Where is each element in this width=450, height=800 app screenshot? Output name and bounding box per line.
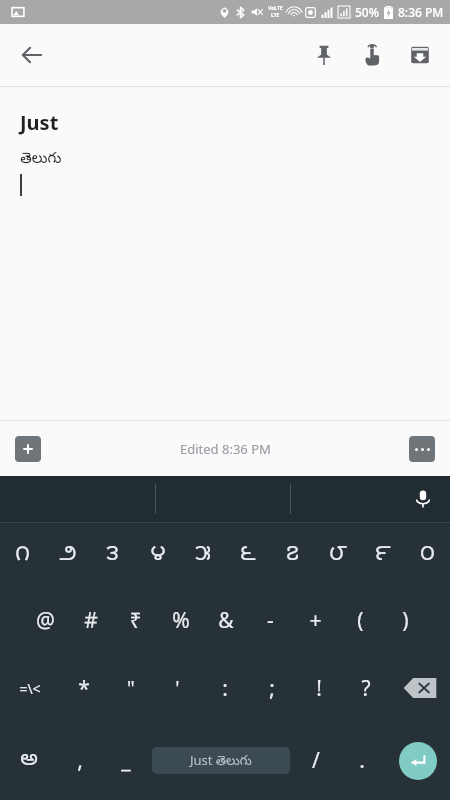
staticText: LTE: [271, 12, 280, 19]
staticText: ౯: [375, 541, 391, 571]
staticText: :: [222, 674, 228, 703]
staticText: ;: [269, 674, 275, 703]
staticText: #: [84, 606, 98, 635]
staticText: %: [172, 606, 190, 635]
staticText: ౮: [329, 541, 347, 571]
staticText: ౪: [150, 541, 166, 571]
button[interactable]: ': [154, 653, 201, 723]
staticText: ౨: [59, 541, 77, 571]
staticText: Just తెలుగు: [190, 751, 252, 771]
staticText: ?: [361, 674, 371, 703]
staticText: *: [78, 674, 90, 703]
button[interactable]: Just తెలుగు: [152, 747, 290, 774]
button[interactable]: ౮: [315, 523, 360, 588]
staticText: &: [218, 606, 234, 635]
staticText: ": [127, 675, 135, 701]
button[interactable]: =\<: [0, 653, 60, 723]
staticText: ౬: [240, 541, 256, 571]
staticText: ౦: [420, 541, 435, 571]
button[interactable]: :: [201, 653, 248, 723]
button[interactable]: Backspace: [389, 653, 450, 723]
button[interactable]: ౫: [180, 523, 225, 588]
button[interactable]: ₹: [113, 588, 158, 653]
button[interactable]: ౭: [270, 523, 315, 588]
button[interactable]: #: [68, 588, 113, 653]
button[interactable]: @: [22, 588, 68, 653]
staticText: -: [267, 606, 274, 635]
button[interactable]: ౯: [360, 523, 405, 588]
button[interactable]: More options: [409, 436, 435, 462]
button[interactable]: *: [60, 653, 107, 723]
button[interactable]: Just: [20, 109, 59, 136]
button[interactable]: Reminder: [348, 31, 396, 79]
button[interactable]: ౪: [135, 523, 180, 588]
button[interactable]: Back: [8, 31, 56, 79]
button[interactable]: ౧: [0, 523, 45, 588]
button[interactable]: .: [339, 723, 385, 798]
staticText: ౫: [195, 541, 211, 571]
button[interactable]: %: [158, 588, 203, 653]
button[interactable]: తెలుగు: [20, 150, 62, 170]
button[interactable]: ?: [342, 653, 389, 723]
staticText: Edited 8:36 PM: [180, 440, 271, 458]
button[interactable]: ,: [57, 723, 103, 798]
button[interactable]: /: [293, 723, 339, 798]
staticText: VoLTE: [268, 5, 283, 12]
button[interactable]: Enter: [399, 742, 437, 780]
button[interactable]: Add: [15, 436, 41, 462]
button[interactable]: Archive: [396, 31, 444, 79]
staticText: !: [316, 674, 322, 703]
button[interactable]: ౦: [405, 523, 450, 588]
button[interactable]: ౩: [90, 523, 135, 588]
staticText: ,: [77, 746, 83, 775]
staticText: =\<: [19, 679, 41, 698]
staticText: (: [357, 606, 364, 635]
button[interactable]: ౨: [45, 523, 90, 588]
staticText: +: [309, 606, 322, 635]
button[interactable]: +: [293, 588, 338, 653]
button[interactable]: _: [103, 723, 149, 798]
staticText: _: [121, 746, 131, 775]
staticText: 8:36 PM: [398, 4, 444, 20]
button[interactable]: ౬: [225, 523, 270, 588]
staticText: ': [175, 675, 180, 701]
staticText: ౭: [286, 541, 299, 571]
button[interactable]: (: [338, 588, 383, 653]
staticText: ౩: [106, 541, 119, 571]
staticText: ₹: [129, 606, 142, 635]
button[interactable]: !: [295, 653, 342, 723]
button[interactable]: Pin note: [300, 31, 348, 79]
staticText: ): [402, 606, 409, 635]
staticText: .: [359, 746, 365, 775]
staticText: @: [36, 606, 55, 635]
staticText: /: [312, 746, 320, 775]
button[interactable]: ;: [248, 653, 295, 723]
button[interactable]: ": [107, 653, 154, 723]
button[interactable]: -: [248, 588, 293, 653]
button[interactable]: అ: [0, 723, 57, 798]
button[interactable]: Voice input: [406, 482, 440, 516]
staticText: అ: [20, 746, 38, 776]
staticText: 50%: [355, 4, 379, 20]
button[interactable]: &: [203, 588, 248, 653]
staticText: ౧: [15, 541, 30, 571]
button[interactable]: ): [383, 588, 428, 653]
